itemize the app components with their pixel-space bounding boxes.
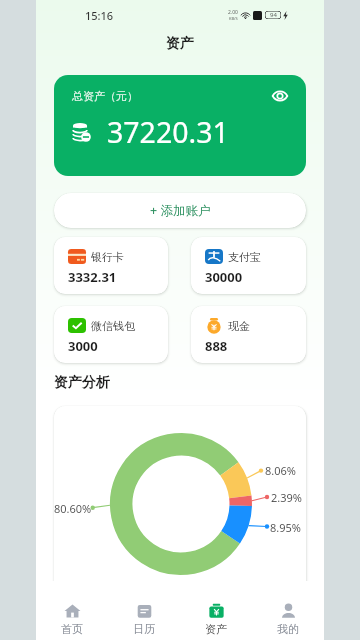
staticText: 2.39% bbox=[271, 490, 302, 505]
staticText: 8.06% bbox=[265, 463, 296, 478]
button[interactable]: 总资产（元） bbox=[54, 75, 306, 176]
staticText: 资产分析 bbox=[54, 374, 110, 392]
staticText: 8.95% bbox=[270, 520, 301, 535]
staticText: 3332.31 bbox=[68, 268, 117, 286]
staticText: 微信钱包 bbox=[91, 319, 135, 333]
staticText: 支付宝 bbox=[228, 250, 261, 264]
button[interactable]: 现金 bbox=[191, 306, 306, 363]
button[interactable]: 微信钱包 bbox=[54, 306, 168, 363]
staticText: 日历 bbox=[133, 622, 155, 636]
staticText: 94 bbox=[270, 11, 277, 19]
staticText: 首页 bbox=[61, 622, 83, 636]
button[interactable]: 日历 bbox=[108, 581, 180, 640]
staticText: 888 bbox=[205, 337, 228, 355]
staticText: 我的 bbox=[277, 622, 299, 636]
button[interactable]: 资产 bbox=[180, 581, 252, 640]
button[interactable]: 我的 bbox=[252, 581, 324, 640]
button[interactable]: 银行卡 bbox=[54, 237, 168, 294]
staticText: KB/S bbox=[229, 16, 238, 21]
button[interactable]: 隐藏金额 bbox=[272, 88, 288, 104]
button[interactable]: 首页 bbox=[36, 581, 108, 640]
staticText: 总资产（元） bbox=[72, 89, 138, 103]
staticText: 银行卡 bbox=[91, 250, 124, 264]
staticText: 3000 bbox=[68, 337, 98, 355]
staticText: 资产 bbox=[166, 35, 194, 53]
staticText: 37220.31 bbox=[107, 113, 229, 152]
button[interactable]: + 添加账户 bbox=[54, 193, 306, 228]
staticText: + 添加账户 bbox=[150, 202, 211, 219]
staticText: 2.00 bbox=[228, 9, 238, 16]
button[interactable]: 支付宝 bbox=[191, 237, 306, 294]
staticText: 30000 bbox=[205, 268, 243, 286]
staticText: 现金 bbox=[228, 319, 250, 333]
staticText: 80.60% bbox=[54, 501, 92, 516]
staticText: 资产 bbox=[205, 622, 227, 636]
staticText: 15:16 bbox=[85, 8, 114, 23]
